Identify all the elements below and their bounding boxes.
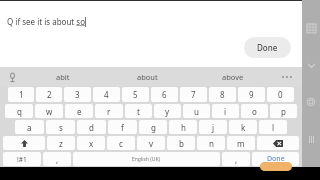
button[interactable]: c [107,136,135,150]
button[interactable]: , [222,152,250,166]
staticText: 3 [75,89,80,100]
button[interactable]: z [47,136,75,150]
staticText: a [27,122,32,133]
button[interactable]: 9 [238,87,265,102]
button[interactable]: n [197,136,225,150]
button[interactable]: f [108,120,137,134]
staticText: 5 [133,89,138,100]
staticText: w [46,106,53,117]
button[interactable]: Done [244,37,291,58]
staticText: English (UK) [132,156,161,163]
button[interactable]: b [167,136,195,150]
staticText: 6 [162,89,167,100]
staticText: Done [267,154,285,164]
button[interactable]: Done [252,152,299,166]
button[interactable]: Shift [3,136,45,150]
button[interactable]: v [137,136,165,150]
staticText: i [224,106,227,117]
staticText: c [119,138,123,149]
button[interactable]: Backspace [257,136,299,150]
staticText: Done [257,42,278,53]
staticText: 9 [249,89,254,100]
staticText: g [151,122,156,133]
button[interactable]: , [43,152,71,166]
button[interactable]: Voice input [3,68,21,86]
staticText: n [209,138,214,149]
button[interactable]: w [35,104,63,118]
staticText: v [149,138,154,149]
button[interactable]: 0 [267,87,294,102]
button[interactable]: k [229,120,257,134]
button[interactable]: Home [302,93,320,111]
staticText: !#1 [17,155,27,164]
staticText: m [237,138,245,149]
button[interactable]: 4 [93,87,120,102]
button[interactable]: above [190,67,275,86]
button[interactable]: e [65,104,93,118]
button[interactable]: s [46,120,75,134]
staticText: Q if see it is about so [7,16,85,27]
button[interactable]: p [270,104,297,118]
staticText: y [165,106,170,117]
button[interactable]: 2 [36,87,62,102]
button[interactable]: Q if see it is about so [7,16,86,27]
button[interactable]: 8 [209,87,236,102]
staticText: s [59,122,63,133]
staticText: , [56,154,59,165]
staticText: l [272,122,275,133]
staticText: f [121,122,124,133]
staticText: r [107,106,111,117]
staticText: 2 [47,89,52,100]
button[interactable]: 7 [180,87,207,102]
staticText: 4 [104,89,109,100]
staticText: h [181,122,186,133]
button[interactable]: Hide keyboard [302,56,320,74]
button[interactable]: q [5,104,33,118]
staticText: b [179,138,184,149]
button[interactable]: 3 [64,87,91,102]
button[interactable]: g [139,120,167,134]
button[interactable]: Switch keyboard [302,19,320,37]
button[interactable]: a [15,120,44,134]
button[interactable]: English (UK) [73,152,220,166]
staticText: 1 [19,89,24,100]
staticText: t [137,106,140,117]
button[interactable]: about [105,67,190,86]
staticText: k [241,122,246,133]
staticText: d [89,122,94,133]
staticText: 8 [220,89,225,100]
staticText: x [89,138,94,149]
button[interactable]: y [154,104,181,118]
staticText: 7 [191,89,196,100]
button[interactable]: h [169,120,197,134]
staticText: about [137,72,158,82]
button[interactable]: x [77,136,105,150]
button[interactable]: j [199,120,227,134]
staticText: e [77,106,82,117]
staticText: , [235,154,238,165]
button[interactable]: t [125,104,152,118]
button[interactable]: r [95,104,123,118]
button[interactable]: u [183,104,210,118]
button[interactable]: Recent apps [302,130,320,148]
staticText: z [59,138,63,149]
staticText: 0 [278,89,283,100]
button[interactable]: m [227,136,255,150]
staticText: u [194,106,199,117]
button[interactable]: o [241,104,268,118]
staticText: p [281,106,286,117]
staticText: j [212,122,215,133]
button[interactable]: More suggestions [275,67,299,86]
staticText: q [17,106,22,117]
button[interactable]: l [259,120,287,134]
button[interactable]: d [77,120,106,134]
button[interactable]: 5 [122,87,149,102]
staticText: above [222,72,244,82]
button[interactable]: i [212,104,239,118]
button[interactable]: 1 [8,87,34,102]
button[interactable]: abit [21,67,105,86]
button[interactable]: !#1 [3,152,41,166]
button[interactable]: 6 [151,87,178,102]
staticText: o [252,106,257,117]
staticText: abit [56,72,70,82]
